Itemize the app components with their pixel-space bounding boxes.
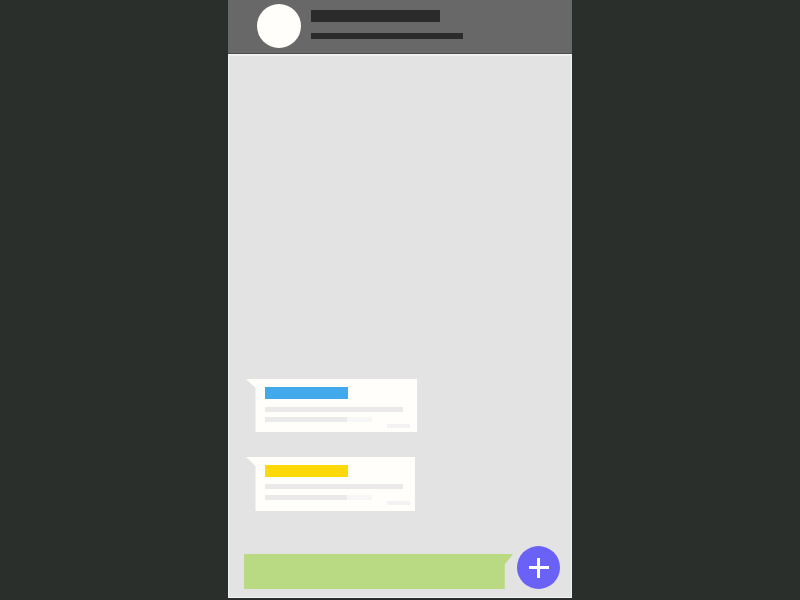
button[interactable] (244, 554, 513, 589)
button[interactable]: Profile (257, 4, 301, 48)
button[interactable] (246, 379, 417, 432)
button[interactable]: Add (517, 546, 560, 589)
button[interactable] (228, 0, 572, 53)
button[interactable] (246, 457, 415, 511)
